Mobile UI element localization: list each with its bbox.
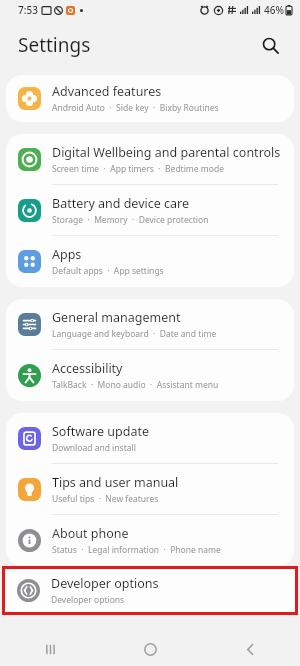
staticText: Accessibility [52, 360, 123, 377]
button[interactable]: Software update [6, 413, 294, 464]
staticText: Screen time · App timers · Bedtime mode [52, 163, 224, 175]
button[interactable]: Search [254, 29, 286, 61]
staticText: About phone [52, 525, 129, 542]
staticText: Advanced features [52, 83, 162, 100]
staticText: General management [52, 309, 181, 326]
staticText: 7:53 [18, 3, 38, 17]
button[interactable]: Recents [28, 632, 72, 666]
staticText: Status · Legal information · Phone name [52, 544, 221, 556]
staticText: Useful tips · New features [52, 493, 159, 505]
button[interactable]: Developer options [5, 569, 295, 612]
staticText: 46% [264, 3, 284, 17]
button[interactable]: Accessibility [6, 350, 294, 401]
staticText: Settings [18, 32, 91, 58]
button[interactable]: Apps [6, 236, 294, 287]
staticText: Storage · Memory · Device protection [52, 214, 209, 226]
staticText: Software update [52, 423, 149, 440]
button[interactable]: Battery and device care [6, 185, 294, 236]
staticText: Apps [52, 246, 82, 263]
button[interactable]: Back [228, 632, 272, 666]
staticText: Language and keyboard · Date and time [52, 328, 217, 340]
button[interactable]: About phone [6, 515, 294, 566]
staticText: Tips and user manual [52, 474, 179, 491]
button[interactable]: Home [128, 632, 172, 666]
button[interactable]: Advanced features [6, 75, 294, 122]
staticText: Battery and device care [52, 195, 190, 212]
staticText: Download and install [52, 442, 136, 454]
button[interactable]: General management [6, 299, 294, 350]
staticText: Default apps · App settings [52, 265, 164, 277]
staticText: Android Auto · Side key · Bixby Routines [52, 102, 219, 114]
staticText: TalkBack · Mono audio · Assistant menu [52, 379, 219, 391]
staticText: Developer options [51, 594, 125, 606]
button[interactable]: Digital Wellbeing and parental controls [6, 134, 294, 185]
staticText: Digital Wellbeing and parental controls [52, 144, 281, 161]
staticText: Developer options [51, 575, 159, 592]
button[interactable]: Tips and user manual [6, 464, 294, 515]
